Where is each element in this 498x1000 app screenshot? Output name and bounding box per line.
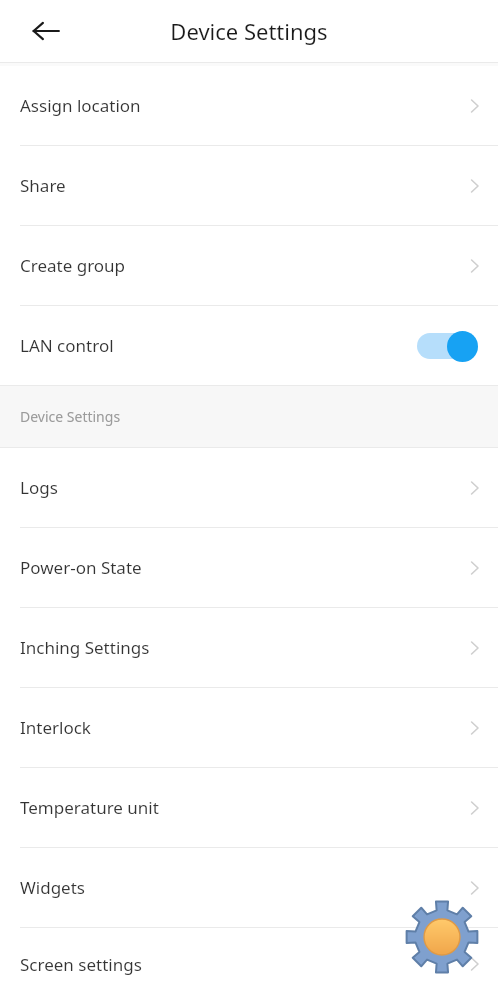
staticText: Device Settings — [20, 407, 121, 426]
staticText: Assign location — [20, 94, 464, 117]
button[interactable]: Create group — [0, 226, 498, 305]
button[interactable]: Settings — [405, 900, 479, 974]
staticText: Power-on State — [20, 556, 464, 579]
staticText: Interlock — [20, 716, 464, 739]
button[interactable]: Assign location — [0, 66, 498, 145]
staticText: Temperature unit — [20, 796, 464, 819]
button[interactable]: Screen settings — [0, 928, 498, 1000]
staticText: Screen settings — [20, 953, 464, 976]
button[interactable]: LAN control — [0, 306, 498, 385]
button[interactable]: Logs — [0, 448, 498, 527]
button[interactable]: Temperature unit — [0, 768, 498, 847]
button[interactable]: Share — [0, 146, 498, 225]
button[interactable]: Interlock — [0, 688, 498, 767]
staticText: Logs — [20, 476, 464, 499]
button[interactable]: Inching Settings — [0, 608, 498, 687]
staticText: LAN control — [20, 334, 416, 357]
staticText: Inching Settings — [20, 636, 464, 659]
button[interactable]: Power-on State — [0, 528, 498, 607]
button[interactable]: Widgets — [0, 848, 498, 927]
staticText: Create group — [20, 254, 464, 277]
button[interactable]: Back — [24, 9, 68, 53]
staticText: Device Settings — [170, 16, 328, 46]
button[interactable]: LAN control toggle — [416, 330, 478, 362]
staticText: Widgets — [20, 876, 464, 899]
staticText: Share — [20, 174, 464, 197]
